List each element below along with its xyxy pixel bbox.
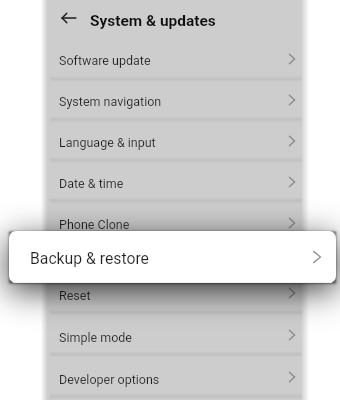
button[interactable]: Backup & restore (9, 231, 336, 283)
staticText: Date & time (59, 176, 124, 191)
staticText: Backup & restore (30, 249, 149, 267)
button[interactable]: Developer options (41, 356, 309, 398)
button[interactable]: Back (56, 5, 82, 31)
staticText: Simple mode (59, 330, 132, 345)
button[interactable]: Language & input (41, 120, 309, 161)
button[interactable]: Phone Clone (41, 202, 309, 243)
button[interactable]: Reset (41, 272, 309, 314)
staticText: Language & input (59, 135, 156, 150)
staticText: Phone Clone (59, 217, 130, 232)
button[interactable]: Date & time (41, 161, 309, 202)
button[interactable]: System navigation (41, 79, 309, 120)
staticText: Developer options (59, 372, 160, 387)
button[interactable]: Simple mode (41, 314, 309, 356)
staticText: System navigation (59, 94, 162, 109)
staticText: Software update (59, 53, 151, 68)
button[interactable]: Software update (41, 38, 309, 79)
staticText: Reset (59, 288, 91, 303)
staticText: System & updates (90, 12, 216, 30)
